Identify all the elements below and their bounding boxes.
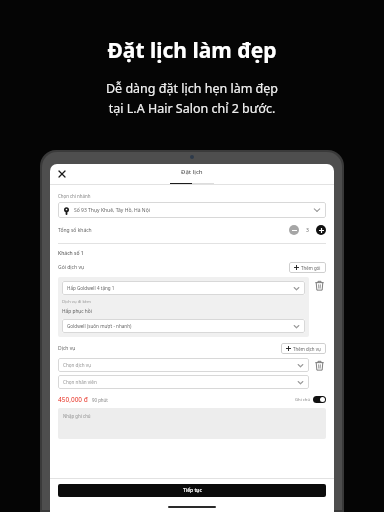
button[interactable]: Giảm — [289, 225, 299, 235]
staticText: Goldwell (suôn mượt - nhanh) — [67, 323, 293, 329]
staticText: Hấp phục hồi — [62, 308, 92, 315]
staticText: Số 93 Thụy Khuê, Tây Hồ, Hà Nội — [74, 207, 313, 214]
staticText: Đặt lịch — [181, 168, 203, 176]
staticText: Dịch vụ — [58, 345, 281, 352]
button[interactable]: Tăng — [316, 225, 326, 235]
staticText: Hấp Goldwell 4 tặng 1 — [67, 285, 293, 291]
button[interactable]: Xóa — [313, 359, 326, 372]
button[interactable]: Goldwell (suôn mượt - nhanh) — [62, 319, 305, 333]
button[interactable]: Chọn dịch vụ — [58, 358, 309, 372]
button[interactable]: Chọn nhân viên — [58, 375, 309, 389]
button[interactable]: Đặt lịch — [181, 168, 203, 176]
staticText: 450,000 đ — [58, 395, 88, 404]
staticText: Khách số 1 — [58, 250, 84, 257]
staticText: Nhập ghi chú — [63, 413, 91, 419]
staticText: Gói dịch vụ — [58, 264, 289, 271]
button[interactable]: Số 93 Thụy Khuê, Tây Hồ, Hà Nội — [58, 202, 326, 218]
button[interactable]: Nhập ghi chú — [58, 408, 326, 439]
staticText: Đặt lịch làm đẹp — [107, 36, 277, 65]
staticText: Dịch vụ đi kèm — [62, 299, 91, 305]
staticText: Ghi chú — [295, 397, 310, 403]
staticText: tại L.A Hair Salon chỉ 2 bước. — [0, 100, 384, 117]
button[interactable]: Xóa — [313, 279, 326, 292]
button[interactable]: Thêm dịch vụ — [281, 343, 326, 354]
staticText: Tiếp tục — [183, 487, 202, 494]
staticText: Tổng số khách — [58, 227, 289, 234]
button[interactable]: Bật ghi chú — [313, 396, 326, 403]
staticText: Dễ dàng đặt lịch hẹn làm đẹp — [0, 80, 384, 97]
button[interactable]: Tiếp tục — [58, 484, 326, 497]
staticText: Thêm dịch vụ — [293, 346, 321, 352]
button[interactable]: Đóng — [56, 168, 68, 180]
staticText: Thêm gói — [301, 265, 321, 271]
staticText: Chọn dịch vụ — [63, 362, 297, 368]
staticText: 3 — [306, 227, 309, 234]
staticText: Chọn chi nhánh — [58, 193, 91, 199]
button[interactable]: Hấp Goldwell 4 tặng 1 — [62, 281, 305, 295]
staticText: Chọn nhân viên — [63, 379, 297, 385]
button[interactable]: Thêm gói — [289, 262, 326, 273]
staticText: 90 phút — [92, 397, 295, 403]
